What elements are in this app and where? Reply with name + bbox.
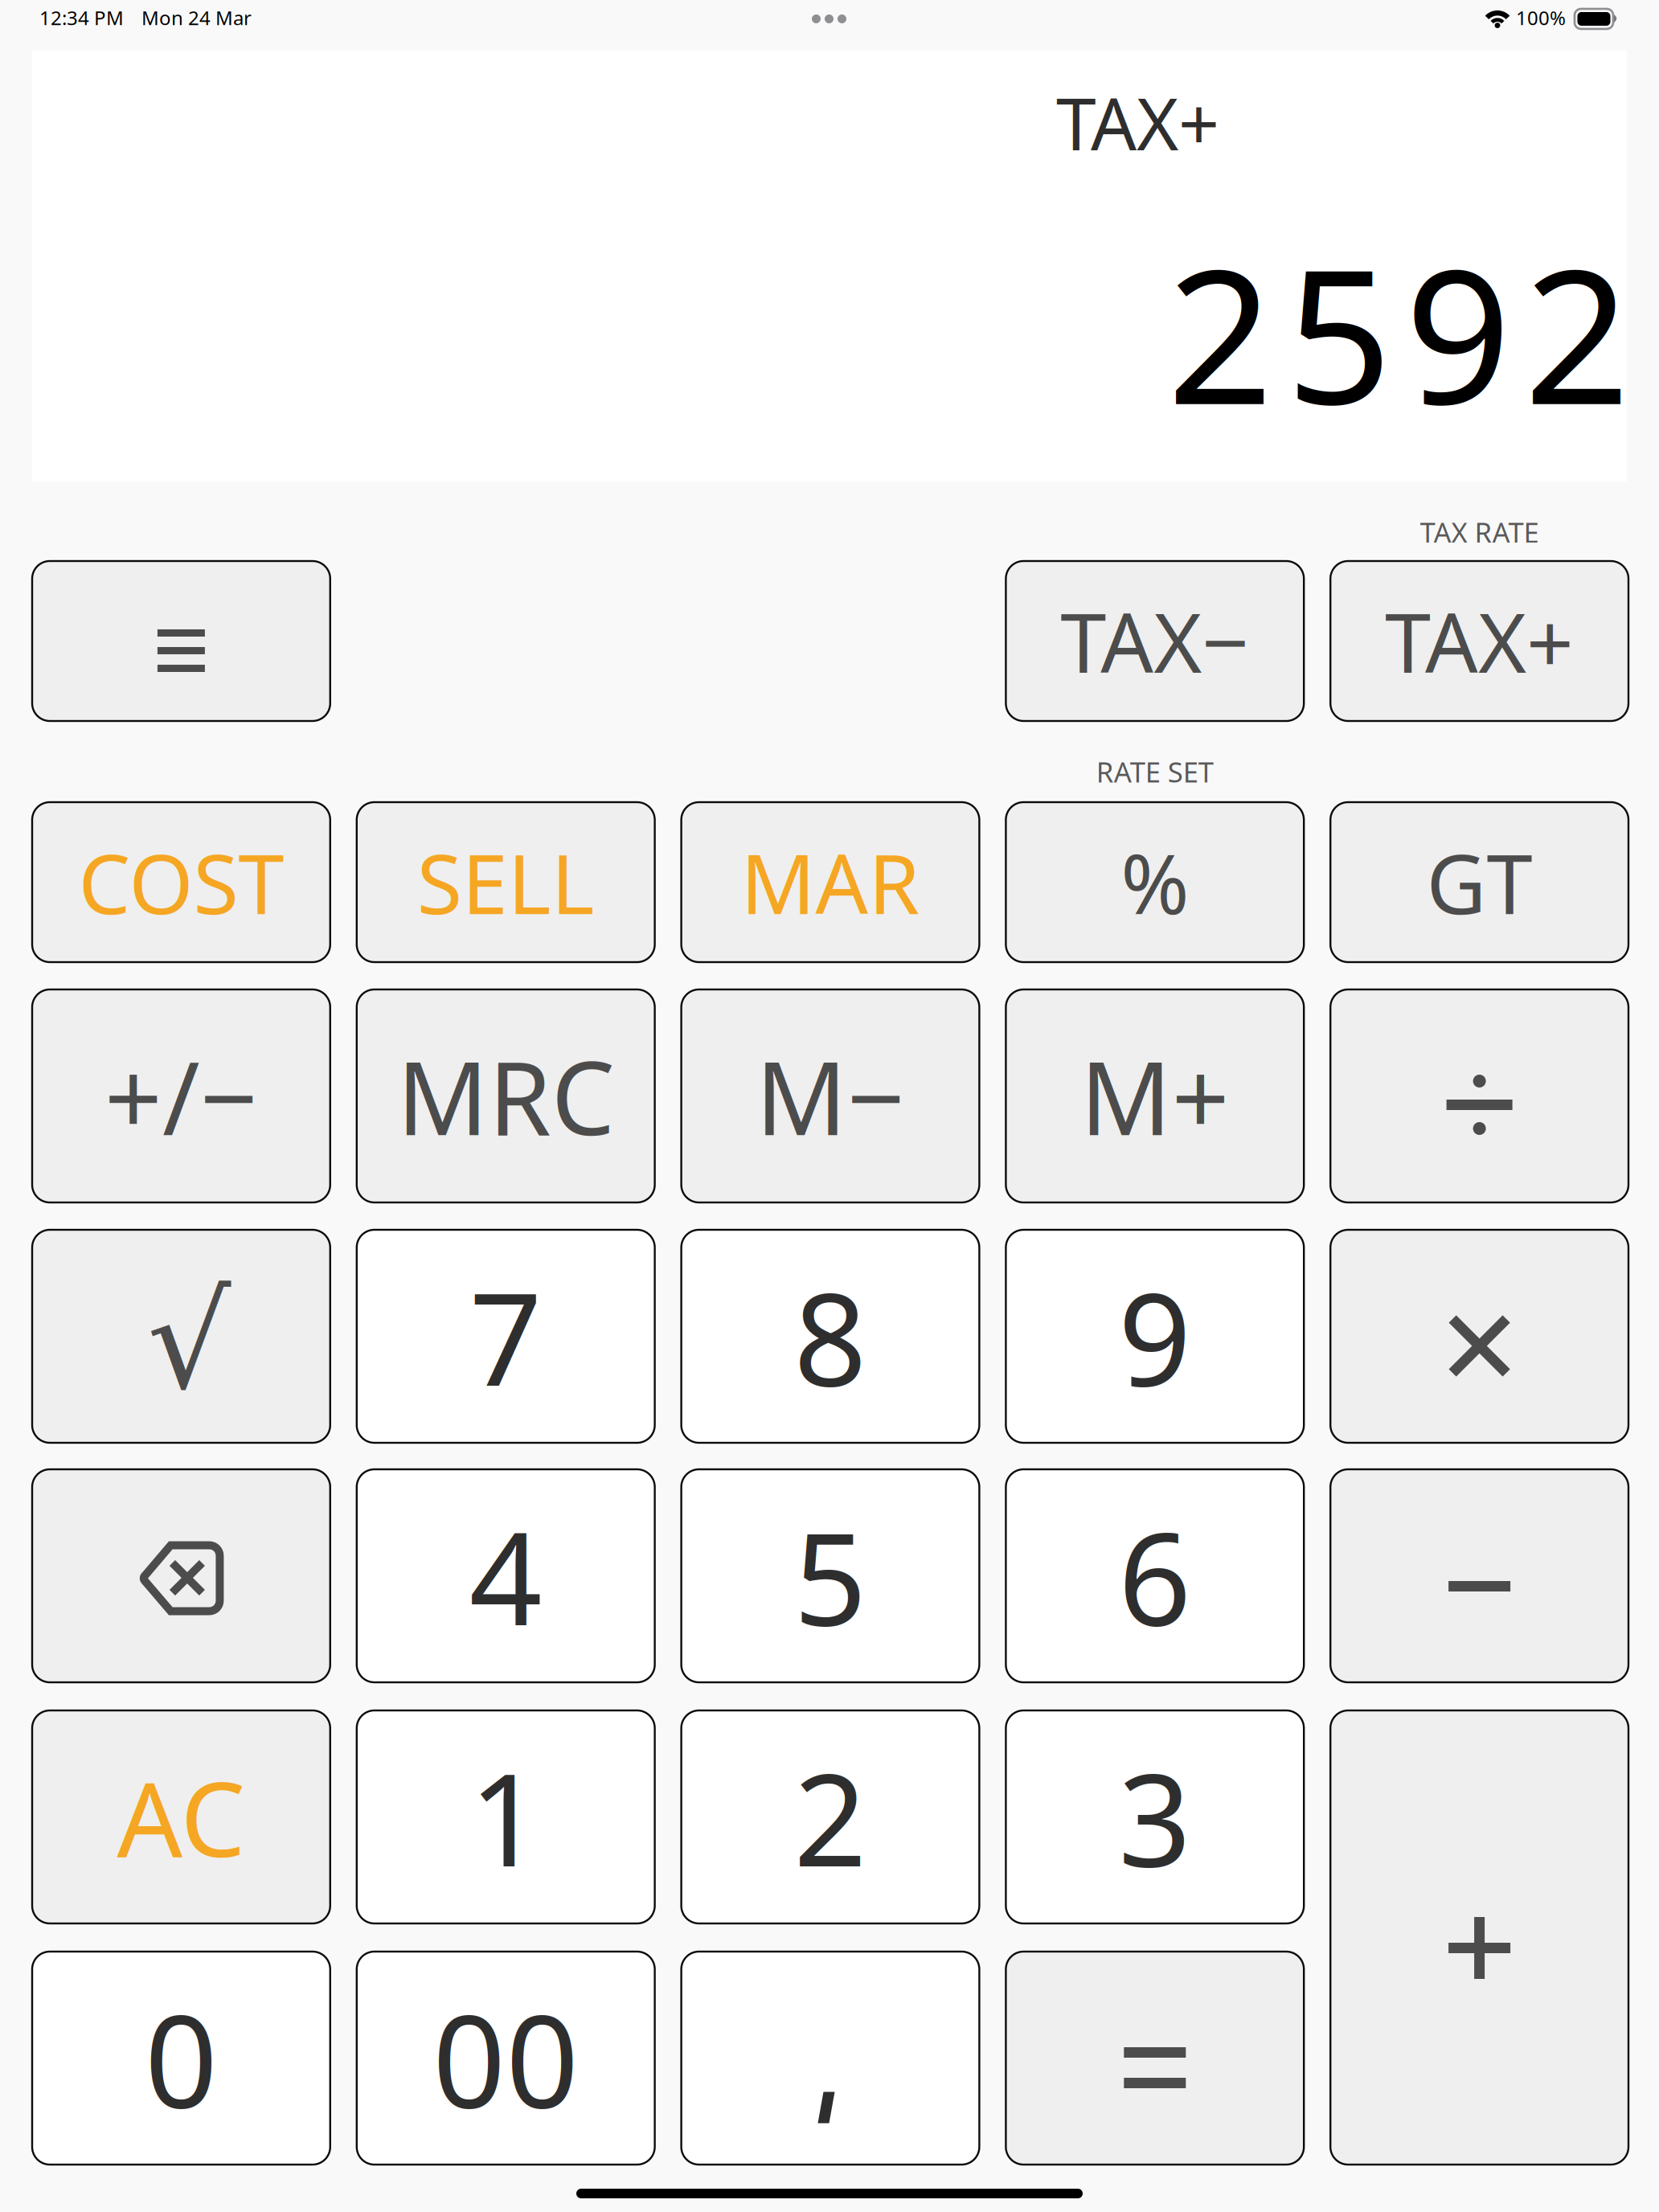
button[interactable]: % <box>1006 802 1304 962</box>
button[interactable]: AC <box>32 1710 330 1923</box>
staticText: Mon 24 Mar <box>141 5 252 30</box>
staticText: TAX+ <box>1385 586 1574 696</box>
staticText: GT <box>1426 827 1532 937</box>
button[interactable]: 9 <box>1006 1230 1304 1443</box>
staticText: 6 <box>1118 1491 1191 1660</box>
button[interactable]: 8 <box>681 1230 979 1443</box>
button[interactable]: 2 <box>681 1710 979 1923</box>
staticText: 8 <box>794 1252 867 1421</box>
staticText: SELL <box>417 827 595 937</box>
staticText: 2 <box>794 1732 867 1902</box>
button[interactable]: COST <box>32 802 330 962</box>
staticText: 5 <box>794 1491 867 1660</box>
staticText: √ <box>147 1267 231 1417</box>
button[interactable]: M+ <box>1006 989 1304 1202</box>
button[interactable]: MRC <box>357 989 655 1202</box>
button[interactable]: +/− <box>32 989 330 1202</box>
staticText: TAX RATE <box>1420 514 1539 551</box>
staticText: AC <box>117 1749 245 1885</box>
button[interactable]: TAX+ <box>1330 561 1628 721</box>
staticText: MAR <box>741 827 920 937</box>
button[interactable]: TAX− <box>1006 561 1304 721</box>
button[interactable]: Plus <box>1330 1710 1628 2165</box>
staticText: M− <box>756 1029 905 1163</box>
staticText: 100% <box>1516 5 1566 30</box>
button[interactable]: 1 <box>357 1710 655 1923</box>
button[interactable]: 5 <box>681 1469 979 1682</box>
staticText: 3 <box>1118 1732 1191 1902</box>
staticText: TAX+ <box>1056 75 1219 170</box>
staticText: 00 <box>433 1973 579 2143</box>
staticText: 4 <box>469 1491 542 1660</box>
staticText: TAX− <box>1060 586 1249 696</box>
staticText: COST <box>78 827 284 937</box>
button[interactable]: Minus <box>1330 1469 1628 1682</box>
button[interactable]: 0 <box>32 1952 330 2165</box>
staticText: 2592 <box>1167 209 1630 455</box>
staticText: 0 <box>145 1973 218 2143</box>
button[interactable]: √ <box>32 1230 330 1443</box>
button[interactable]: Comma <box>681 1952 979 2165</box>
button[interactable]: SELL <box>357 802 655 962</box>
staticText: RATE SET <box>1096 753 1214 790</box>
staticText: 12:34 PM <box>39 5 124 30</box>
staticText: +/− <box>104 1029 258 1163</box>
button[interactable]: Multiply <box>1330 1230 1628 1443</box>
button[interactable]: M− <box>681 989 979 1202</box>
staticText: MRC <box>397 1029 615 1163</box>
button[interactable]: Menu <box>32 561 330 721</box>
staticText: 9 <box>1118 1252 1191 1421</box>
staticText: 1 <box>469 1732 542 1902</box>
button[interactable]: Divide <box>1330 989 1628 1202</box>
staticText: % <box>1121 827 1189 937</box>
staticText: 7 <box>469 1252 542 1421</box>
button[interactable]: Delete <box>32 1469 330 1682</box>
staticText: M+ <box>1080 1029 1230 1163</box>
button[interactable]: Equals <box>1006 1952 1304 2165</box>
button[interactable]: 00 <box>357 1952 655 2165</box>
button[interactable]: 3 <box>1006 1710 1304 1923</box>
button[interactable]: 4 <box>357 1469 655 1682</box>
button[interactable]: MAR <box>681 802 979 962</box>
button[interactable]: 6 <box>1006 1469 1304 1682</box>
button[interactable]: GT <box>1330 802 1628 962</box>
button[interactable]: 7 <box>357 1230 655 1443</box>
